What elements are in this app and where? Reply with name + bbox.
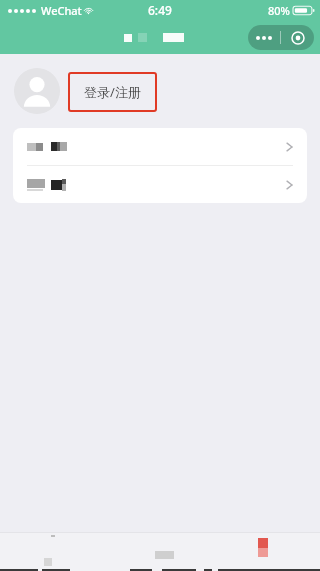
button[interactable]: Avatar — [14, 68, 60, 114]
button[interactable] — [13, 128, 307, 165]
button[interactable] — [13, 166, 307, 203]
button[interactable]: More options and close mini program — [248, 25, 314, 50]
staticText: 80% — [268, 3, 290, 18]
staticText: 登录/注册 — [84, 83, 141, 101]
button[interactable]: 登录/注册 — [68, 72, 157, 112]
staticText: WeChat — [41, 3, 82, 18]
staticText: 6:49 — [148, 2, 172, 18]
